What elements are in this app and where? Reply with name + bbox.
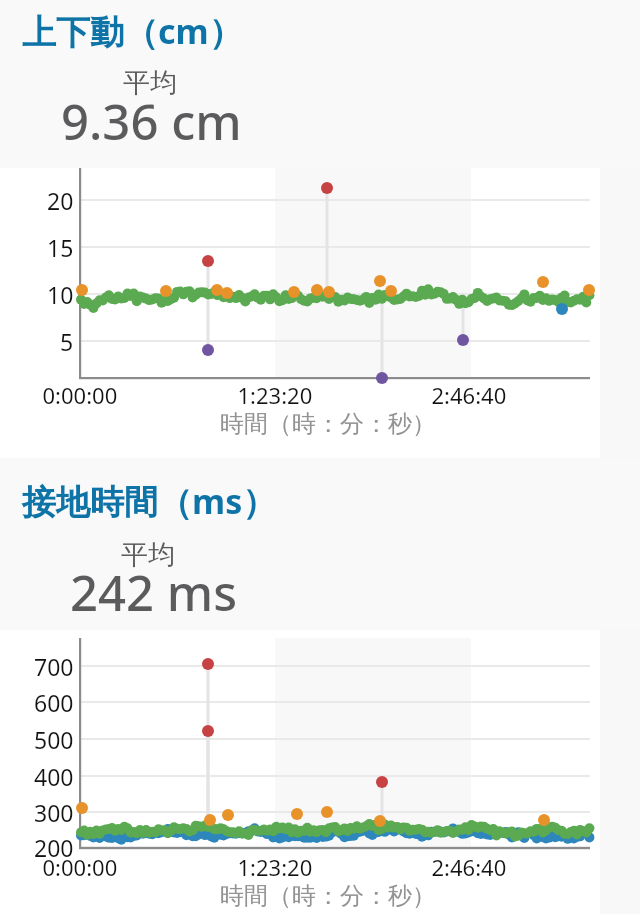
- button[interactable]: [0, 0, 640, 914]
